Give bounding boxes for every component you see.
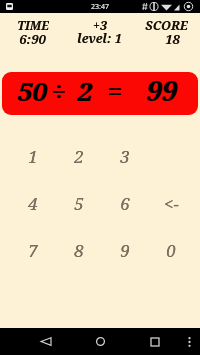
staticText: 50	[18, 73, 48, 108]
staticText: level: 1	[77, 30, 122, 45]
staticText: 3	[120, 145, 130, 168]
button[interactable]: 6	[102, 180, 148, 227]
staticText: 2	[74, 145, 84, 168]
button[interactable]: 3	[102, 133, 148, 180]
staticText: 5	[74, 192, 84, 215]
staticText: 9	[120, 239, 130, 262]
button[interactable]: 0	[148, 227, 194, 274]
staticText: 0	[166, 239, 176, 262]
button[interactable]: Recent apps	[133, 328, 177, 355]
staticText: level: 1	[77, 30, 122, 45]
staticText: SCORE	[145, 17, 188, 32]
staticText: =	[107, 73, 122, 108]
staticText: 6:90	[19, 30, 46, 45]
staticText: 5	[74, 192, 84, 215]
staticText: SCORE	[145, 17, 188, 32]
staticText: 8	[74, 239, 84, 262]
staticText: 4	[28, 192, 38, 215]
staticText: 8	[74, 239, 84, 262]
staticText: 18	[165, 30, 180, 45]
staticText: 99	[146, 72, 177, 109]
staticText: 7	[28, 239, 38, 262]
staticText: ÷	[52, 73, 67, 108]
staticText: TIME	[17, 17, 49, 32]
staticText: 4	[28, 192, 38, 215]
staticText: +3	[93, 17, 107, 32]
staticText: 9	[120, 239, 130, 262]
staticText: 18	[165, 30, 180, 45]
staticText: 1	[28, 145, 38, 168]
staticText: ÷	[51, 73, 66, 108]
button[interactable]: 4	[9, 180, 56, 227]
staticText: 3	[120, 145, 130, 168]
staticText: +3	[93, 17, 107, 32]
button[interactable]: Home	[78, 328, 122, 355]
staticText: TIME	[17, 17, 49, 32]
staticText: 23:47	[91, 2, 109, 12]
button[interactable]: 1	[9, 133, 56, 180]
button[interactable]: More options	[178, 328, 200, 355]
staticText: 6:90	[19, 30, 46, 45]
staticText: =	[108, 73, 123, 108]
button[interactable]: 7	[9, 227, 56, 274]
staticText: 7	[28, 239, 38, 262]
button[interactable]: Back	[23, 328, 67, 355]
button[interactable]: 50	[2, 72, 198, 115]
staticText: 1	[28, 145, 38, 168]
staticText: 2	[78, 73, 93, 108]
button[interactable]: 5	[56, 180, 102, 227]
staticText: <-	[164, 192, 179, 215]
staticText: 2	[74, 145, 84, 168]
button[interactable]: 2	[56, 133, 102, 180]
staticText: 99	[147, 72, 178, 109]
staticText: 0	[166, 239, 176, 262]
button[interactable]: 9	[102, 227, 148, 274]
staticText: <-	[164, 192, 179, 215]
button[interactable]: Backspace	[148, 180, 194, 227]
staticText: 6	[120, 192, 130, 215]
staticText: 2	[77, 73, 92, 108]
button[interactable]: 8	[56, 227, 102, 274]
staticText: 6	[120, 192, 130, 215]
staticText: 50	[17, 73, 47, 108]
